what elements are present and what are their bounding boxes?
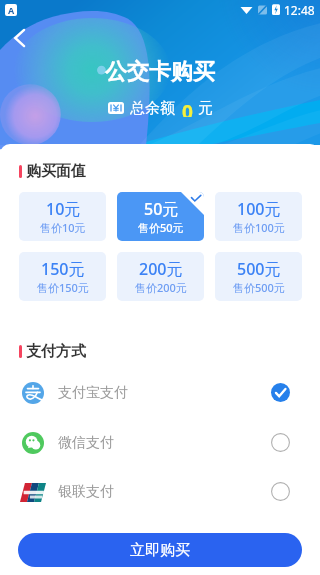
staticText: 售价200元 <box>135 280 187 295</box>
button[interactable]: 立即购买 <box>18 533 302 567</box>
staticText: 500元 <box>237 258 281 280</box>
staticText: 总余额 <box>130 99 175 117</box>
button[interactable]: 微信支付 <box>0 418 320 467</box>
button[interactable]: 50元 <box>117 192 204 241</box>
staticText: 微信支付 <box>58 434 114 452</box>
button[interactable]: 支付宝支付 <box>0 368 320 417</box>
staticText: 50元 <box>144 198 179 220</box>
button[interactable]: 10元 <box>19 192 106 241</box>
staticText: 100元 <box>237 198 281 220</box>
staticText: 公交卡购买 <box>105 58 215 86</box>
staticText: 售价50元 <box>138 220 184 235</box>
button[interactable]: 100元 <box>215 192 302 241</box>
button[interactable]: 500元 <box>215 252 302 301</box>
staticText: 售价150元 <box>37 280 89 295</box>
staticText: 12:48 <box>284 2 315 18</box>
staticText: 0 <box>182 99 193 117</box>
staticText: 立即购买 <box>130 541 190 560</box>
staticText: 银联支付 <box>58 483 114 501</box>
staticText: 10元 <box>46 198 81 220</box>
staticText: 售价10元 <box>40 220 86 235</box>
staticText: 支付宝支付 <box>58 384 128 402</box>
staticText: 支付方式 <box>26 342 86 361</box>
staticText: A <box>8 4 15 16</box>
button[interactable]: 150元 <box>19 252 106 301</box>
button[interactable]: 200元 <box>117 252 204 301</box>
staticText: 售价500元 <box>233 280 285 295</box>
button[interactable]: Back <box>6 25 32 51</box>
staticText: 购买面值 <box>26 162 86 181</box>
staticText: 售价100元 <box>233 220 285 235</box>
staticText: 200元 <box>139 258 183 280</box>
button[interactable]: 银联支付 <box>0 467 320 516</box>
staticText: 150元 <box>41 258 85 280</box>
staticText: 元 <box>198 99 213 117</box>
